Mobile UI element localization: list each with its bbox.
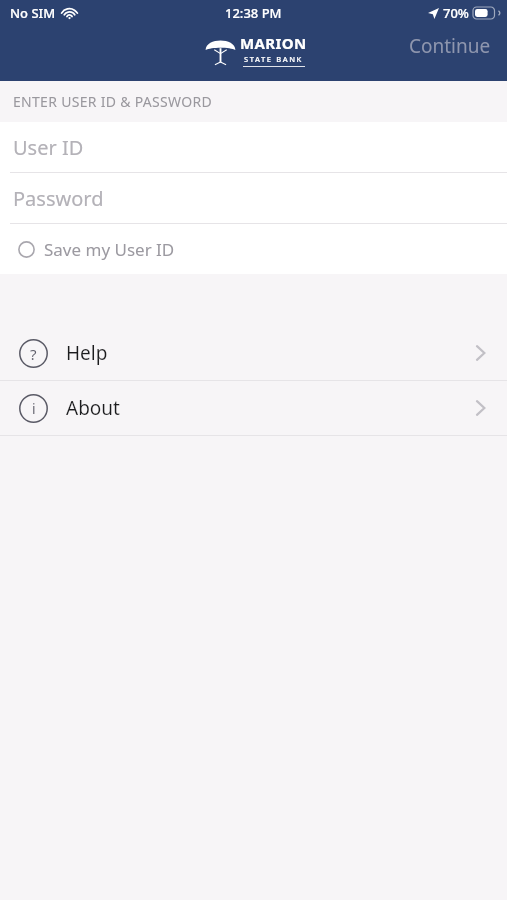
staticText: About: [66, 395, 120, 421]
staticText: Save my User ID: [44, 238, 175, 261]
staticText: ?: [30, 344, 37, 364]
staticText: STATE BANK: [244, 54, 303, 64]
staticText: Password: [13, 185, 104, 212]
button[interactable]: ?: [0, 326, 507, 380]
staticText: User ID: [13, 134, 84, 161]
staticText: ENTER USER ID & PASSWORD: [13, 92, 212, 111]
button[interactable]: i: [0, 381, 507, 435]
staticText: Continue: [409, 33, 491, 59]
button[interactable]: Password: [0, 173, 507, 223]
staticText: i: [32, 399, 36, 418]
staticText: MARION: [240, 33, 307, 53]
button[interactable]: Continue: [393, 27, 507, 65]
staticText: No SIM: [10, 4, 56, 22]
staticText: 70%: [443, 4, 469, 22]
button[interactable]: Save my User ID: [0, 224, 507, 274]
staticText: 12:38 PM: [225, 4, 282, 22]
other: Open Help: [475, 344, 486, 362]
staticText: Help: [66, 340, 108, 366]
button[interactable]: User ID: [0, 122, 507, 172]
other: Open About: [475, 399, 486, 417]
